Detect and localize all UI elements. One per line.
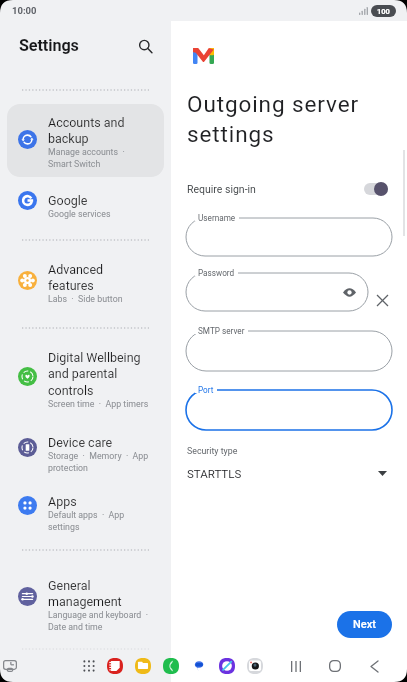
staticText: Language and keyboard · Date and time <box>48 610 148 632</box>
staticText: Apps <box>48 494 77 509</box>
staticText: Storage · Memory · App protection <box>48 451 149 473</box>
staticText: Password <box>198 268 235 278</box>
button[interactable]: All apps <box>80 657 98 675</box>
staticText: Advanced features <box>48 262 104 293</box>
button[interactable]: Clear password <box>372 290 392 310</box>
staticText: Device care <box>48 435 113 450</box>
staticText: Google <box>48 193 88 208</box>
button[interactable]: internet <box>218 657 236 675</box>
staticText: 100 <box>377 7 390 16</box>
button[interactable]: Advanced features <box>7 245 164 317</box>
button[interactable]: notes <box>106 657 124 675</box>
staticText: SMTP server <box>198 326 245 336</box>
staticText: Default apps · App settings <box>48 510 125 532</box>
button[interactable]: files <box>134 657 152 675</box>
staticText: Settings <box>19 36 79 55</box>
button[interactable]: back <box>364 656 384 676</box>
button[interactable]: recents <box>286 656 306 676</box>
button[interactable]: Require sign-in <box>187 178 392 200</box>
staticText: Digital Wellbeing and parental controls <box>48 350 141 398</box>
button[interactable]: Require sign-in toggle <box>374 182 388 196</box>
button[interactable]: phone <box>162 657 180 675</box>
staticText: Manage accounts · Smart Switch <box>48 147 125 169</box>
staticText: STARTTLS <box>187 467 242 480</box>
staticText: Port <box>198 385 214 395</box>
button[interactable]: Show password <box>340 283 358 301</box>
staticText: Labs · Side button <box>48 294 123 304</box>
staticText: Username <box>198 213 236 223</box>
button[interactable]: Google <box>7 176 164 232</box>
staticText: 10:00 <box>12 5 37 16</box>
button[interactable]: camera <box>246 657 264 675</box>
button[interactable]: Search <box>132 33 158 59</box>
staticText: Screen time · App timers <box>48 399 149 409</box>
staticText: Require sign-in <box>187 183 256 195</box>
button[interactable]: Digital Wellbeing and parental controls <box>7 333 164 423</box>
staticText: Next <box>353 618 376 631</box>
staticText: Google services <box>48 209 111 219</box>
button[interactable]: General management <box>7 561 164 633</box>
button[interactable]: Next <box>337 611 392 638</box>
staticText: General management <box>48 578 122 609</box>
button[interactable]: STARTTLS <box>187 462 387 484</box>
button[interactable]: Accounts and backup <box>7 98 164 188</box>
staticText: Security type <box>187 446 238 456</box>
button[interactable]: home <box>325 656 345 676</box>
button[interactable]: messages <box>190 657 208 675</box>
button[interactable]: Apps <box>7 477 164 541</box>
staticText: Outgoing server settings <box>187 91 359 147</box>
button[interactable]: Device care <box>7 418 164 482</box>
staticText: Accounts and backup <box>48 115 125 146</box>
button[interactable]: Screen settings <box>1 657 19 675</box>
